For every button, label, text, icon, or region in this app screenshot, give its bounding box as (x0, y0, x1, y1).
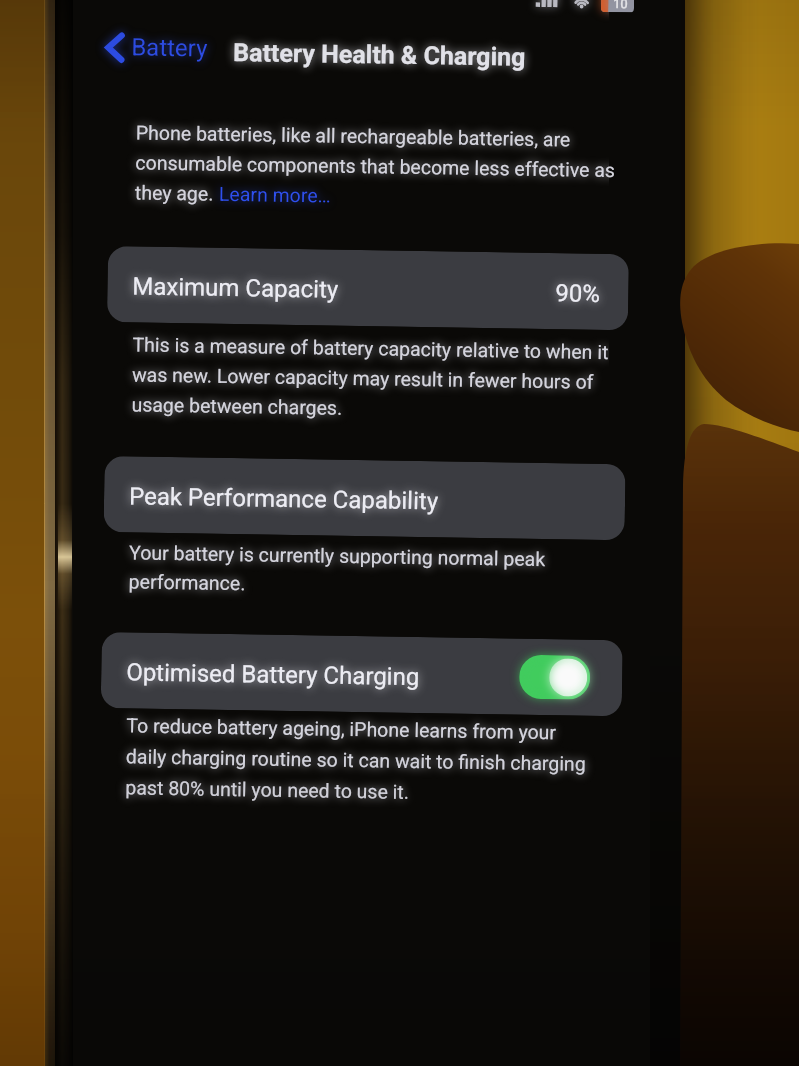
staticText: Maximum Capacity (132, 272, 339, 304)
staticText: daily charging routine so it can wait to… (126, 745, 586, 776)
staticText: 90% (555, 279, 601, 308)
button[interactable]: Back to Battery (102, 30, 212, 66)
button[interactable]: Optimised Battery Charging toggle (519, 655, 591, 700)
button[interactable]: Back to Battery (102, 30, 212, 66)
staticText: 10 (613, 0, 628, 11)
staticText: To reduce battery ageing, iPhone learns … (126, 714, 556, 744)
staticText: This is a measure of battery capacity re… (132, 333, 609, 364)
staticText: Battery (131, 33, 208, 63)
staticText: usage between charges. (131, 393, 343, 420)
staticText: consumable components that become less e… (135, 151, 609, 182)
button[interactable]: Optimised Battery Charging toggle (519, 655, 591, 700)
staticText: daily charging routine so it can wait to… (126, 745, 586, 776)
staticText: usage between charges. (131, 393, 343, 420)
staticText: This is a measure of battery capacity re… (132, 333, 609, 364)
button[interactable]: Maximum Capacity (107, 246, 629, 330)
button[interactable]: Learn more… (219, 183, 331, 208)
staticText: was new. Lower capacity may result in fe… (132, 363, 594, 394)
button[interactable]: Learn more… (219, 183, 331, 208)
staticText: Battery (131, 33, 208, 63)
staticText: Your battery is currently supporting nor… (129, 541, 545, 571)
staticText: they age. (135, 181, 219, 206)
staticText: they age. (135, 181, 219, 206)
button[interactable]: Peak Performance Capability (103, 456, 626, 540)
button[interactable]: Peak Performance Capability (103, 456, 609, 540)
staticText: Phone batteries, like all rechargeable b… (136, 121, 571, 151)
staticText: Maximum Capacity (132, 272, 339, 304)
staticText: Optimised Battery Charging (126, 658, 420, 691)
staticText: Phone batteries, like all rechargeable b… (136, 121, 571, 151)
staticText: past 80% until you need to use it. (125, 776, 409, 804)
button[interactable]: Optimised Battery Charging (101, 632, 609, 716)
staticText: consumable components that become less e… (135, 151, 616, 182)
staticText: Battery Health & Charging (233, 38, 526, 72)
staticText: was new. Lower capacity may result in fe… (132, 363, 594, 394)
staticText: Peak Performance Capability (129, 482, 439, 515)
button[interactable]: Optimised Battery Charging (101, 632, 623, 716)
staticText: past 80% until you need to use it. (125, 776, 409, 804)
staticText: 90% (555, 279, 601, 308)
staticText: performance. (128, 570, 246, 595)
staticText: To reduce battery ageing, iPhone learns … (126, 714, 556, 744)
staticText: Optimised Battery Charging (126, 658, 420, 691)
staticText: Peak Performance Capability (129, 482, 439, 515)
staticText: Battery Health & Charging (233, 38, 526, 72)
staticText: Your battery is currently supporting nor… (129, 541, 545, 571)
staticText: performance. (128, 570, 246, 595)
button[interactable]: Maximum Capacity (107, 246, 609, 330)
